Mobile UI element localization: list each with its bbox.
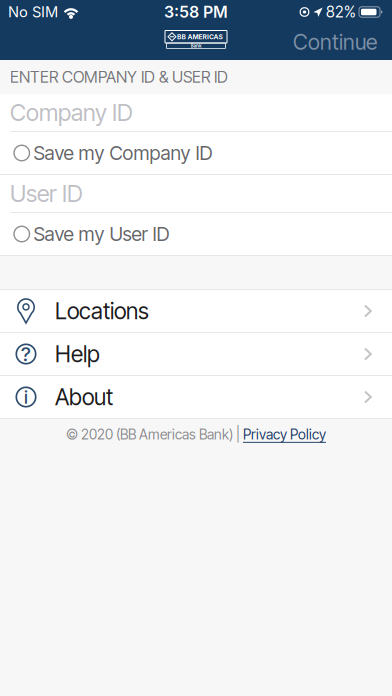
staticText: i <box>24 386 28 408</box>
button[interactable]: i <box>0 376 392 418</box>
button[interactable]: Save my User ID <box>0 213 392 255</box>
staticText: ? <box>21 342 31 366</box>
staticText: ENTER COMPANY ID & USER ID <box>10 68 228 86</box>
staticText: Company ID <box>10 98 133 127</box>
staticText: Bank <box>185 40 207 51</box>
staticText: 3:58 PM <box>164 2 228 22</box>
staticText: Save my Company ID <box>33 141 212 165</box>
staticText: Continue <box>293 29 377 55</box>
staticText: Save my User ID <box>33 222 169 246</box>
staticText: User ID <box>10 179 83 208</box>
staticText: Locations <box>55 298 149 324</box>
button[interactable]: Save my Company ID <box>0 132 392 174</box>
button[interactable]: ? <box>0 333 392 375</box>
button[interactable]: User ID <box>0 175 392 212</box>
staticText: © 2020 (BB Americas Bank) | <box>66 426 243 443</box>
staticText: 82% <box>326 3 356 21</box>
button[interactable]: Locations <box>0 290 392 332</box>
staticText: BB AMERICAS <box>154 29 246 45</box>
staticText: Help <box>55 341 100 367</box>
button[interactable]: Company ID <box>0 94 392 131</box>
staticText: Privacy Policy <box>243 426 326 443</box>
staticText: About <box>55 384 113 410</box>
button[interactable]: Privacy Policy <box>243 426 326 443</box>
button[interactable]: Continue <box>293 29 392 55</box>
staticText: No SIM <box>8 3 58 21</box>
